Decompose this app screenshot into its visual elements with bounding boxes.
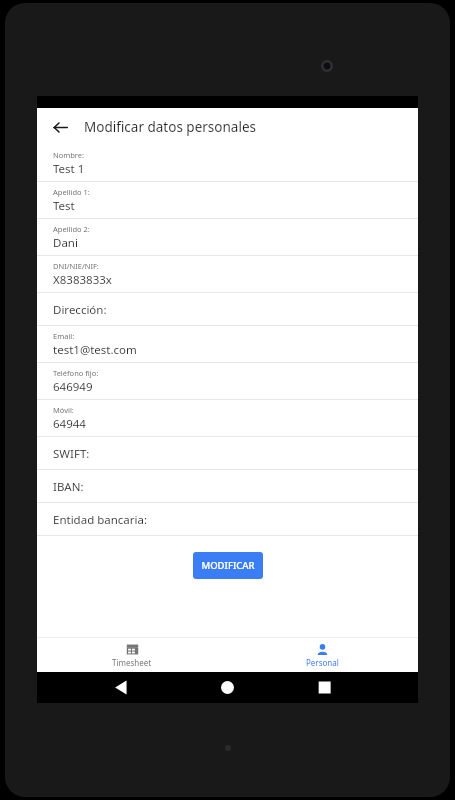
button[interactable]: MODIFICAR bbox=[193, 552, 263, 579]
staticText: Modificar datos personales bbox=[84, 118, 256, 136]
staticText: Test 1 bbox=[53, 161, 85, 177]
button[interactable]: Back bbox=[47, 114, 73, 140]
staticText: MODIFICAR bbox=[201, 559, 255, 572]
staticText: SWIFT: bbox=[53, 446, 90, 462]
button[interactable]: Teléfono fijo: bbox=[37, 363, 418, 400]
staticText: Email: bbox=[53, 331, 75, 341]
staticText: Apellido 1: bbox=[53, 187, 90, 197]
staticText: IBAN: bbox=[53, 479, 84, 495]
button[interactable]: DNI/NIE/NIF: bbox=[37, 256, 418, 293]
staticText: DNI/NIE/NIF: bbox=[53, 261, 99, 271]
staticText: Entidad bancaria: bbox=[53, 512, 148, 528]
staticText: Timesheet bbox=[112, 657, 152, 668]
button[interactable]: Móvil: bbox=[37, 400, 418, 437]
button[interactable]: Timesheet bbox=[37, 638, 227, 672]
button[interactable]: IBAN: bbox=[37, 470, 418, 503]
button[interactable]: Email: bbox=[37, 326, 418, 363]
staticText: 646949 bbox=[53, 379, 93, 395]
staticText: Dirección: bbox=[53, 302, 107, 318]
staticText: Móvil: bbox=[53, 405, 74, 415]
button[interactable]: Dirección: bbox=[37, 293, 418, 326]
staticText: 64944 bbox=[53, 416, 86, 432]
staticText: Dani bbox=[53, 235, 78, 251]
staticText: Personal bbox=[306, 657, 339, 668]
button[interactable]: Nombre: bbox=[37, 145, 418, 182]
staticText: Apellido 2: bbox=[53, 224, 90, 234]
button[interactable]: Apellido 1: bbox=[37, 182, 418, 219]
button[interactable]: Apellido 2: bbox=[37, 219, 418, 256]
staticText: Teléfono fijo: bbox=[53, 368, 99, 378]
staticText: Nombre: bbox=[53, 150, 85, 160]
button[interactable]: SWIFT: bbox=[37, 437, 418, 470]
staticText: X8383833x bbox=[53, 272, 112, 288]
staticText: Test bbox=[53, 198, 75, 214]
button[interactable]: Personal bbox=[227, 638, 418, 672]
staticText: test1@test.com bbox=[53, 342, 137, 358]
button[interactable]: Entidad bancaria: bbox=[37, 503, 418, 536]
